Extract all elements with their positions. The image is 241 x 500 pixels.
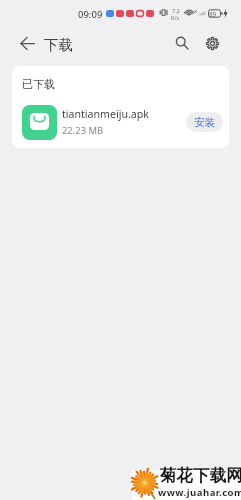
staticText: 安装 bbox=[194, 116, 216, 129]
staticText: 09:09 bbox=[78, 8, 103, 21]
button[interactable]: 安装 bbox=[186, 112, 223, 132]
button[interactable]: Back bbox=[13, 29, 41, 57]
staticText: www.juahar.com bbox=[158, 486, 241, 499]
staticText: 22.23 MB bbox=[62, 124, 104, 137]
button[interactable]: tiantianmeiju.apk bbox=[12, 102, 229, 142]
staticText: 89 bbox=[209, 10, 217, 18]
staticText: tiantianmeiju.apk bbox=[62, 107, 149, 121]
staticText: x bbox=[194, 7, 198, 15]
button[interactable]: Search bbox=[168, 29, 196, 57]
staticText: 菊花下载网 bbox=[160, 465, 241, 486]
staticText: 已下载 bbox=[22, 77, 55, 91]
staticText: 下载 bbox=[44, 36, 73, 54]
button[interactable]: Settings bbox=[198, 29, 226, 57]
staticText: K/s bbox=[171, 14, 180, 21]
staticText: 7.2 bbox=[172, 7, 180, 14]
